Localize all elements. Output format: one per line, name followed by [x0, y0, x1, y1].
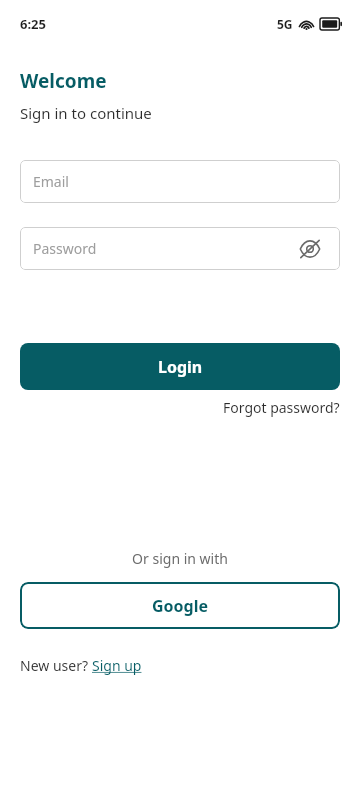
button[interactable]: Email: [20, 160, 340, 203]
staticText: Welcome: [20, 68, 107, 94]
staticText: 6:25: [20, 15, 46, 33]
button[interactable]: Login: [20, 343, 340, 390]
button[interactable]: Password: [20, 227, 340, 270]
staticText: Or sign in with: [0, 549, 360, 568]
staticText: Sign in to continue: [20, 103, 152, 123]
button[interactable]: Forgot password?: [223, 398, 340, 417]
staticText: Email: [33, 172, 69, 191]
button[interactable]: Google: [20, 582, 340, 629]
button[interactable]: Sign up: [92, 656, 142, 675]
staticText: Forgot password?: [223, 398, 340, 417]
staticText: 5G: [277, 16, 293, 32]
staticText: Sign up: [92, 656, 142, 675]
staticText: New user?: [20, 656, 92, 675]
staticText: Login: [158, 356, 203, 378]
staticText: Google: [152, 595, 209, 617]
button[interactable]: Show password: [298, 237, 322, 261]
staticText: Password: [33, 239, 97, 258]
